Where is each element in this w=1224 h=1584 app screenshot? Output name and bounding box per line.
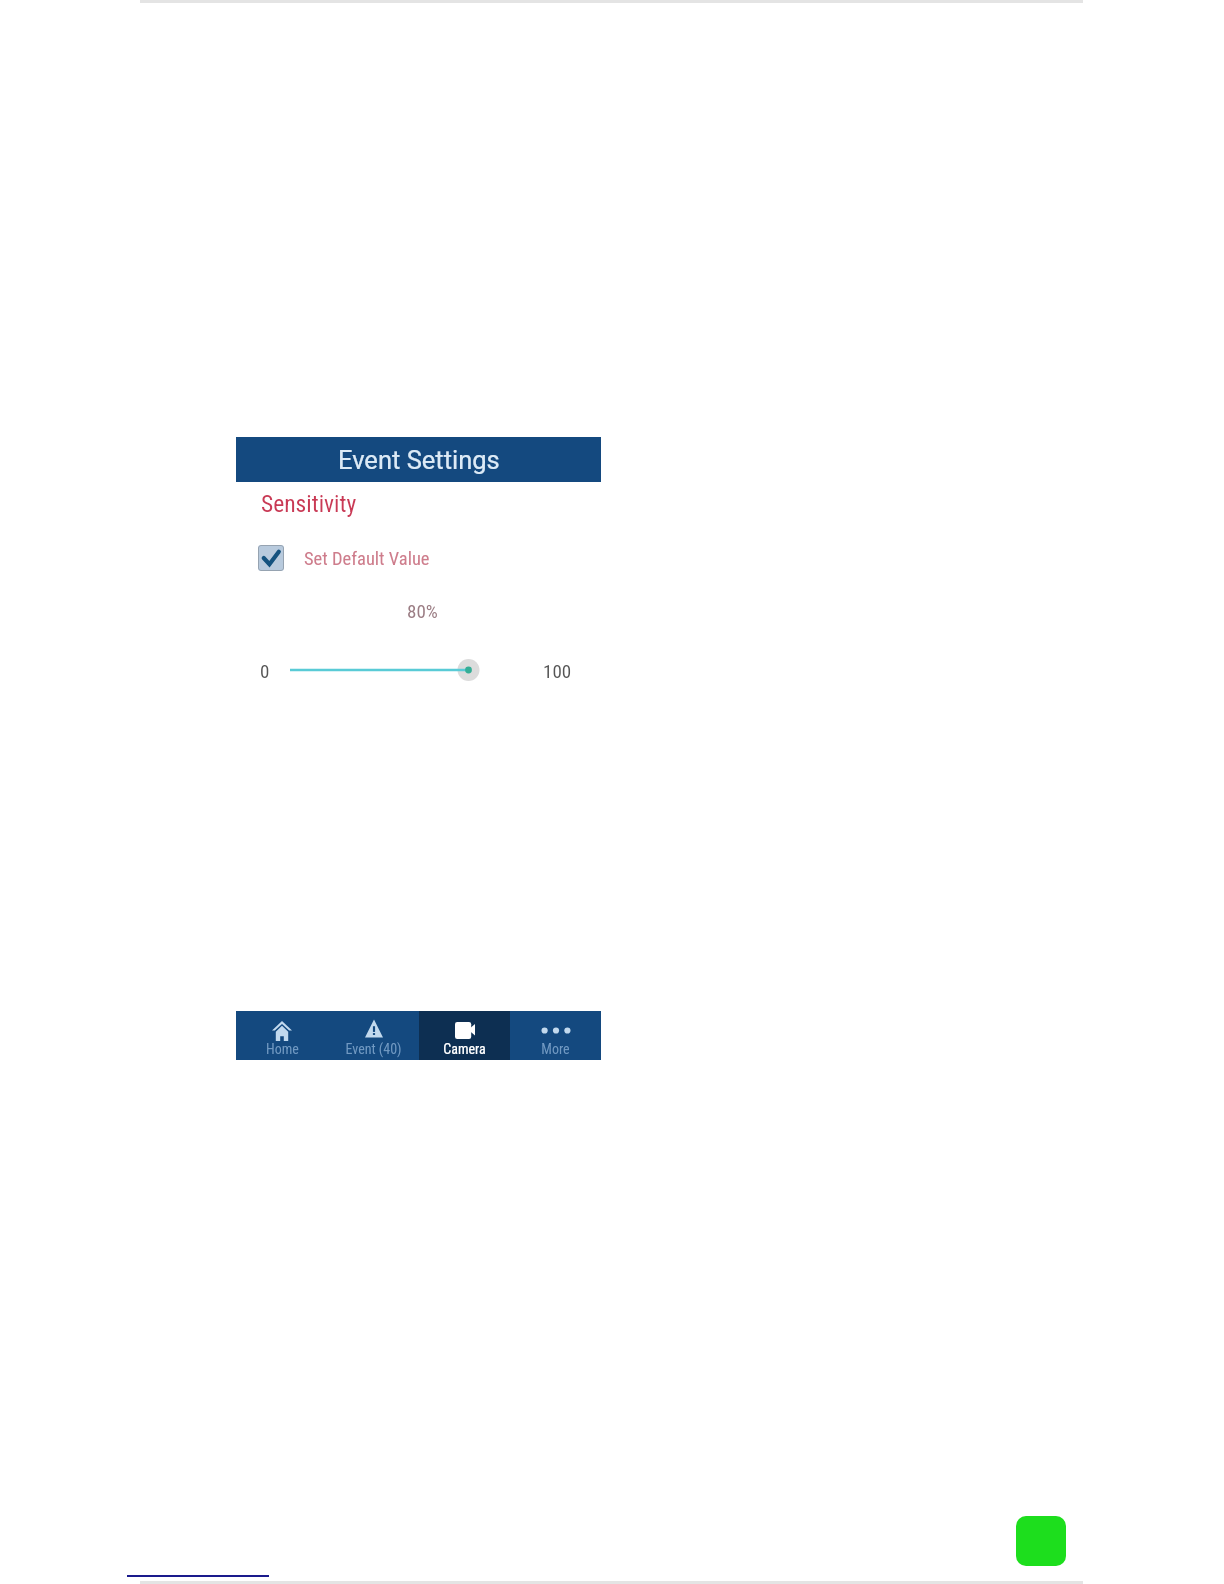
button[interactable]: More: [510, 1011, 601, 1060]
staticText: More: [541, 1041, 570, 1057]
staticText: 80%: [407, 600, 438, 622]
staticText: 100: [543, 660, 572, 682]
button[interactable]: Camera: [419, 1011, 510, 1060]
button[interactable]: Set Default Value: [304, 548, 430, 570]
staticText: Home: [266, 1041, 299, 1057]
staticText: Sensitivity: [261, 490, 357, 518]
button[interactable]: Event Settings: [236, 437, 601, 482]
staticText: Event Settings: [338, 445, 500, 475]
button[interactable]: Add: [1016, 1516, 1066, 1566]
staticText: Event (40): [345, 1041, 402, 1057]
staticText: 0: [260, 660, 270, 682]
button[interactable]: Home: [236, 1011, 328, 1060]
button[interactable]: Set Default Value checkbox: [258, 545, 284, 571]
staticText: Camera: [443, 1041, 486, 1057]
button[interactable]: Event (40): [328, 1011, 419, 1060]
